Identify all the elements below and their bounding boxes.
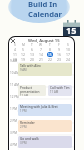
button[interactable]: 16 xyxy=(54,52,63,57)
staticText: 21 xyxy=(39,57,43,62)
staticText: 12 PM xyxy=(10,95,19,99)
staticText: 4 xyxy=(14,47,16,52)
button[interactable]: 21 xyxy=(36,57,45,62)
staticText: 22 xyxy=(48,57,52,62)
staticText: 14 xyxy=(39,52,43,57)
staticText: Talk with Alex xyxy=(20,64,41,68)
button[interactable]: 24 xyxy=(63,57,72,62)
staticText: 11 AM xyxy=(20,94,29,96)
staticText: Product presentation xyxy=(20,86,46,94)
staticText: 10 xyxy=(66,47,70,52)
staticText: Go and walk xyxy=(20,137,39,141)
button[interactable]: Talk with Alex xyxy=(20,64,72,76)
button[interactable]: 14 xyxy=(36,52,45,57)
staticText: 9 AM xyxy=(20,68,27,72)
button[interactable]: 18 xyxy=(11,57,19,62)
button[interactable]: 8 xyxy=(45,47,54,52)
staticText: 1 PM xyxy=(20,109,27,113)
staticText: 15 xyxy=(48,53,52,57)
button[interactable]: 19 xyxy=(19,57,27,62)
button[interactable]: Call with Tim xyxy=(50,86,72,96)
staticText: 9 AM xyxy=(10,59,18,63)
button[interactable]: 5 xyxy=(19,47,27,52)
staticText: S xyxy=(14,43,16,47)
staticText: Calendar xyxy=(28,9,62,19)
staticText: M xyxy=(22,43,25,47)
staticText: 9 xyxy=(58,47,60,52)
button[interactable]: 22 xyxy=(45,57,54,62)
staticText: 18 xyxy=(13,57,17,62)
button[interactable]: 12 xyxy=(19,52,27,57)
staticText: 10 AM xyxy=(10,71,19,75)
staticText: 17 xyxy=(66,52,70,57)
button[interactable]: 10 xyxy=(63,47,72,52)
button[interactable]: 17 xyxy=(63,52,72,57)
staticText: 12 xyxy=(21,52,25,57)
staticText: 5 xyxy=(22,47,24,52)
staticText: 11 xyxy=(13,52,17,57)
staticText: 13 xyxy=(30,52,34,57)
staticText: 24 xyxy=(66,57,70,62)
staticText: 4 PM xyxy=(10,143,18,147)
staticText: Build In xyxy=(28,0,58,9)
staticText: T xyxy=(31,43,33,47)
staticText: 3 PM xyxy=(10,131,18,135)
staticText: 2 PM xyxy=(20,125,27,129)
staticText: 1 PM xyxy=(10,107,18,111)
staticText: Meeting with Julia & Bret xyxy=(20,105,58,109)
staticText: F xyxy=(58,43,60,47)
button[interactable]: Close xyxy=(10,38,16,44)
button[interactable]: 7 xyxy=(36,47,45,52)
button[interactable]: 9 xyxy=(54,47,63,52)
button[interactable]: 4 xyxy=(11,47,19,52)
staticText: 3 PM xyxy=(20,141,27,145)
button[interactable]: 11 xyxy=(11,52,19,57)
button[interactable]: 23 xyxy=(54,57,63,62)
staticText: 19 xyxy=(21,57,25,62)
staticText: W xyxy=(39,43,42,47)
staticText: 15 xyxy=(66,24,77,36)
staticText: Wed, August 15 xyxy=(28,38,60,44)
button[interactable]: Reminder xyxy=(20,121,72,132)
button[interactable]: 15 xyxy=(45,52,54,57)
staticText: 16 xyxy=(57,52,61,57)
staticText: S xyxy=(67,43,69,47)
staticText: 20 xyxy=(30,57,34,62)
staticText: 11 AM xyxy=(50,90,59,94)
button[interactable]: Product presentation xyxy=(20,86,46,96)
button[interactable]: Meeting with Julia & Bret xyxy=(20,105,72,116)
staticText: 6 xyxy=(31,47,33,52)
staticText: Call with Tim xyxy=(50,86,70,90)
staticText: T xyxy=(49,43,51,47)
button[interactable]: Calendar, 15 xyxy=(63,20,80,36)
staticText: 23 xyxy=(57,57,61,62)
button[interactable]: 20 xyxy=(27,57,36,62)
staticText: 8 xyxy=(49,47,51,52)
staticText: 2 PM xyxy=(10,119,18,123)
button[interactable]: Go and walk xyxy=(20,137,72,148)
staticText: Reminder xyxy=(20,121,35,125)
button[interactable]: 6 xyxy=(27,47,36,52)
button[interactable]: 13 xyxy=(27,52,36,57)
staticText: 11 AM xyxy=(10,83,19,87)
staticText: 7 xyxy=(40,47,42,52)
